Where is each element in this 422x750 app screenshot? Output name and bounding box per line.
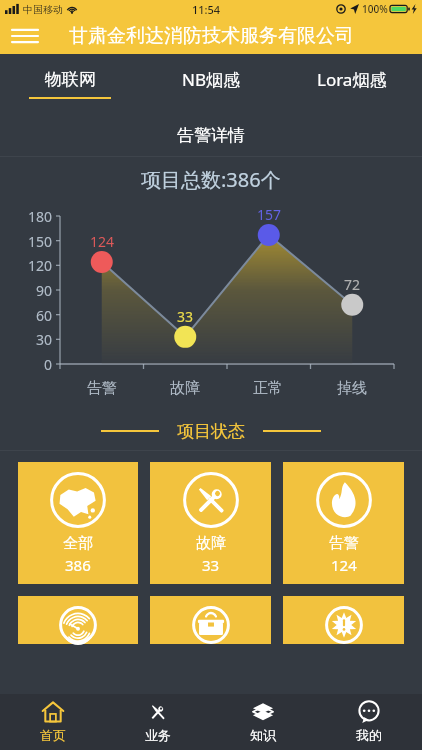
staticText: 11:54	[192, 2, 221, 17]
staticText: 掉线	[337, 379, 367, 398]
staticText: 90	[6, 281, 52, 300]
staticText: 124	[331, 555, 357, 575]
button[interactable]: 业务	[105, 694, 210, 750]
button[interactable]: 全部	[18, 462, 138, 584]
button[interactable]	[18, 596, 138, 644]
staticText: 124	[84, 232, 120, 251]
staticText: 中国移动	[23, 3, 63, 16]
staticText: 项目状态	[177, 421, 245, 442]
staticText: 故障	[170, 379, 200, 398]
button[interactable]	[150, 596, 271, 644]
button[interactable]: 告警	[283, 462, 404, 584]
button[interactable]: 物联网	[0, 54, 140, 114]
staticText: 故障	[196, 534, 226, 553]
staticText: 180	[6, 207, 52, 226]
staticText: 首页	[40, 727, 66, 743]
staticText: 33	[202, 555, 220, 575]
staticText: 甘肃金利达消防技术服务有限公司	[69, 24, 354, 48]
button[interactable]: Menu	[8, 19, 42, 53]
staticText: 知识	[250, 727, 276, 743]
staticText: 60	[6, 306, 52, 325]
staticText: 全部	[63, 534, 93, 553]
staticText: 业务	[145, 727, 171, 743]
staticText: 告警详情	[177, 125, 245, 146]
button[interactable]: Lora烟感	[281, 54, 422, 114]
staticText: 72	[334, 275, 370, 294]
button[interactable]: 知识	[210, 694, 316, 750]
button[interactable]: 故障	[150, 462, 271, 584]
staticText: 30	[6, 330, 52, 349]
staticText: 物联网	[45, 69, 96, 90]
staticText: NB烟感	[182, 68, 240, 91]
staticText: Lora烟感	[317, 68, 387, 91]
staticText: 我的	[356, 727, 382, 743]
button[interactable]: 首页	[0, 694, 105, 750]
staticText: 386	[65, 555, 91, 575]
staticText: 157	[251, 205, 287, 224]
staticText: 项目总数:386个	[141, 166, 281, 193]
button[interactable]	[283, 596, 404, 644]
staticText: 告警	[329, 534, 359, 553]
staticText: 0	[6, 355, 52, 374]
staticText: 33	[167, 307, 203, 326]
button[interactable]: NB烟感	[140, 54, 281, 114]
staticText: 100%	[362, 2, 388, 16]
staticText: 120	[6, 256, 52, 275]
staticText: 告警	[87, 379, 117, 398]
staticText: 150	[6, 232, 52, 251]
button[interactable]: 我的	[316, 694, 422, 750]
staticText: 正常	[253, 379, 283, 398]
